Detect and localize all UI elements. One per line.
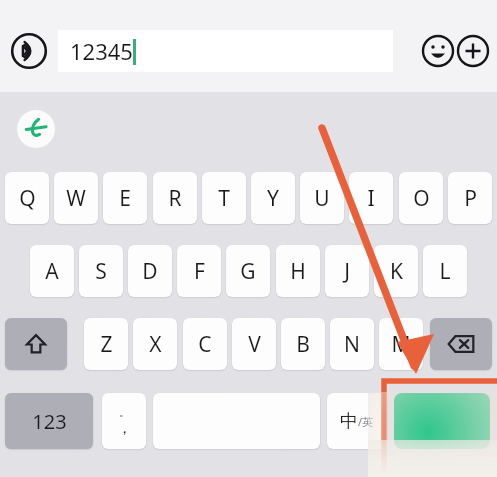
staticText: U [314, 184, 330, 213]
staticText: M [391, 330, 411, 359]
staticText: 123 [32, 408, 67, 435]
button[interactable]: F [177, 245, 221, 297]
button[interactable]: Send [394, 393, 490, 449]
button[interactable]: J [325, 245, 369, 297]
button[interactable]: Z [84, 318, 128, 370]
button[interactable]: B [281, 318, 325, 370]
staticText: /英 [358, 414, 374, 429]
button[interactable]: P [448, 172, 492, 224]
button[interactable]: M [379, 318, 423, 370]
button[interactable]: W [54, 172, 98, 224]
button[interactable]: 。 [102, 393, 146, 449]
button[interactable]: T [202, 172, 246, 224]
button[interactable]: Input method logo [17, 110, 55, 148]
button[interactable]: U [300, 172, 344, 224]
button[interactable]: Q [5, 172, 49, 224]
staticText: Y [267, 184, 279, 213]
staticText: 12345 [70, 36, 133, 66]
staticText: T [218, 184, 230, 213]
button[interactable]: C [183, 318, 227, 370]
staticText: C [198, 330, 212, 359]
staticText: B [296, 330, 310, 359]
button[interactable]: More options [455, 33, 491, 69]
staticText: J [344, 257, 350, 286]
button[interactable]: Y [251, 172, 295, 224]
staticText: ， [117, 419, 132, 438]
staticText: K [390, 257, 403, 286]
button[interactable]: X [133, 318, 177, 370]
button[interactable]: G [226, 245, 270, 297]
button[interactable]: Emoji [420, 33, 456, 69]
button[interactable]: N [330, 318, 374, 370]
button[interactable]: L [423, 245, 467, 297]
staticText: N [344, 330, 360, 359]
staticText: D [142, 257, 158, 286]
staticText: 中 [340, 410, 358, 433]
staticText: 。 [119, 405, 130, 419]
staticText: V [248, 330, 261, 359]
button[interactable]: 中 [327, 393, 387, 449]
staticText: P [464, 184, 477, 213]
staticText: O [413, 184, 430, 213]
button[interactable]: A [30, 245, 74, 297]
button[interactable]: 12345 [58, 30, 393, 72]
staticText: R [168, 184, 182, 213]
button[interactable]: E [103, 172, 147, 224]
button[interactable]: V [232, 318, 276, 370]
button[interactable]: K [374, 245, 418, 297]
button[interactable]: D [128, 245, 172, 297]
button[interactable]: I [349, 172, 393, 224]
staticText: G [240, 257, 256, 286]
button[interactable]: Voice input [10, 32, 48, 70]
staticText: A [45, 257, 59, 286]
staticText: Z [100, 330, 113, 359]
staticText: W [66, 184, 86, 213]
staticText: S [95, 257, 107, 286]
staticText: Q [19, 184, 36, 213]
staticText: X [149, 330, 162, 359]
button[interactable] [5, 318, 67, 370]
button[interactable]: O [399, 172, 443, 224]
staticText: L [439, 257, 451, 286]
button[interactable]: S [79, 245, 123, 297]
staticText: F [194, 257, 205, 286]
button[interactable]: 123 [5, 393, 93, 449]
staticText: E [119, 184, 131, 213]
staticText: I [367, 184, 375, 213]
button[interactable]: R [153, 172, 197, 224]
button[interactable]: H [276, 245, 320, 297]
button[interactable] [430, 318, 492, 370]
staticText: H [290, 257, 306, 286]
